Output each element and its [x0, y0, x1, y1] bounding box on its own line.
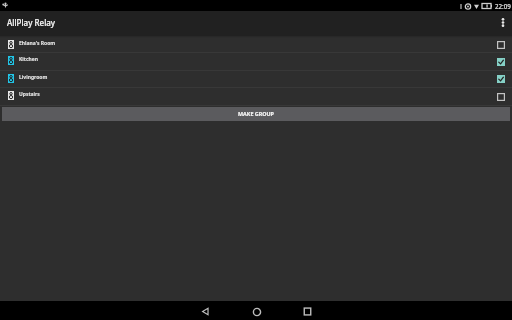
button[interactable]: More options [493, 11, 512, 36]
button[interactable]: Recent apps [298, 302, 317, 320]
staticText: Kitchen [19, 56, 39, 63]
button[interactable]: MAKE GROUP [2, 107, 510, 121]
button[interactable]: Home [247, 302, 266, 320]
button[interactable]: Select device [494, 90, 508, 104]
button[interactable]: Select device [494, 38, 508, 52]
button[interactable]: Select device [494, 55, 508, 69]
staticText: MAKE GROUP [238, 110, 274, 117]
button[interactable]: Livingroom [0, 71, 512, 87]
staticText: AllPlay Relay [7, 17, 56, 28]
button[interactable]: Upstairs [0, 88, 512, 105]
button[interactable]: Back [196, 302, 215, 320]
button[interactable]: Ehlana's Room [0, 38, 512, 52]
button[interactable]: Select device [494, 72, 508, 86]
staticText: Upstairs [19, 91, 40, 98]
button[interactable]: Kitchen [0, 53, 512, 70]
staticText: 22:09 [495, 2, 511, 10]
staticText: Livingroom [19, 74, 48, 81]
staticText: Ehlana's Room [19, 40, 56, 47]
